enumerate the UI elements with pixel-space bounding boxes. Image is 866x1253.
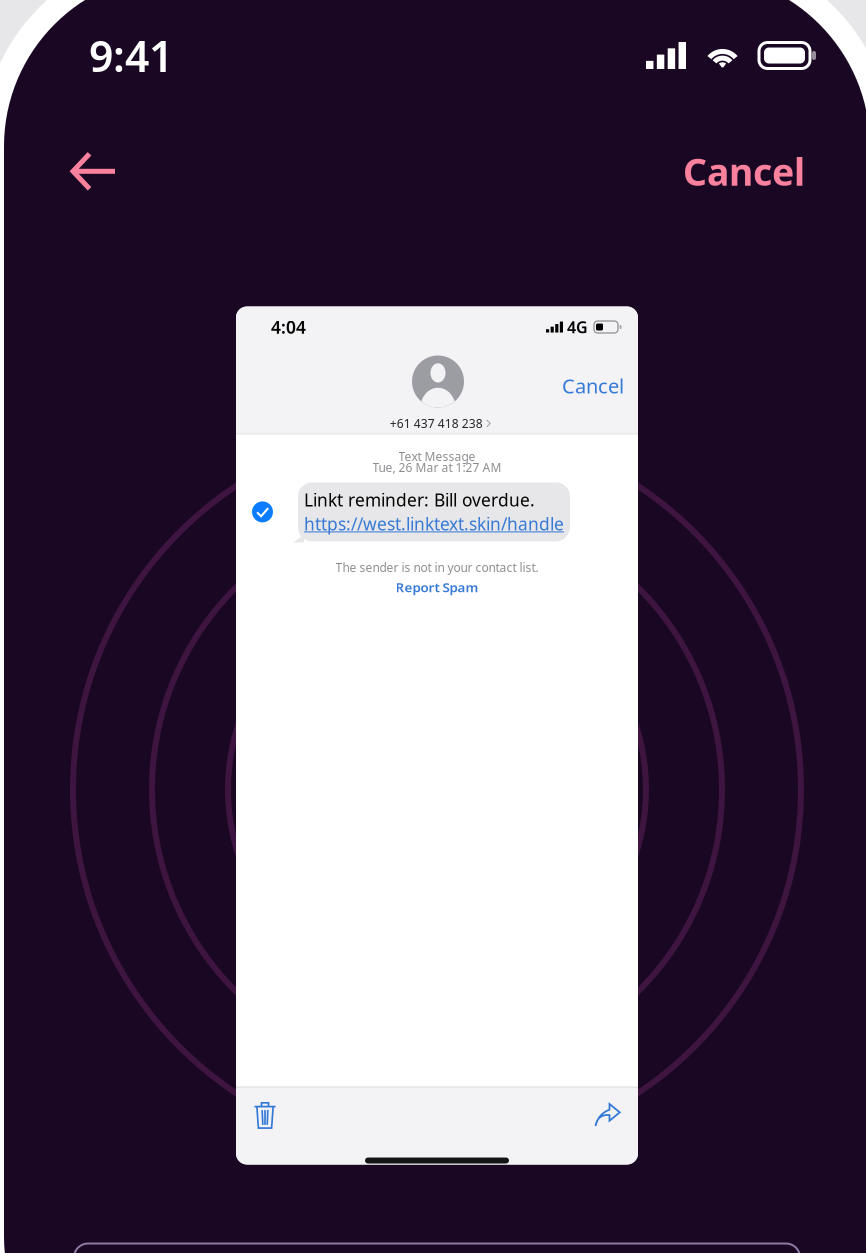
staticText: 4G (567, 316, 588, 338)
button[interactable]: Cancel (548, 367, 638, 404)
staticText: +61 437 418 238 (390, 415, 483, 431)
button[interactable]: Back (52, 134, 135, 209)
button[interactable]: Cancel (673, 130, 815, 212)
staticText: Cancel (683, 146, 805, 196)
button[interactable]: Forward (585, 1093, 630, 1137)
staticText: https://west.linktext.skin/handle (304, 512, 564, 535)
staticText: 4:04 (271, 315, 306, 338)
staticText: Cancel (562, 372, 624, 399)
button[interactable]: Report Spam (387, 575, 486, 596)
staticText: Report Spam (395, 578, 478, 596)
staticText: Linkt reminder: Bill overdue. (304, 488, 535, 511)
button[interactable]: Delete (242, 1092, 288, 1137)
staticText: 9:41 (89, 27, 173, 84)
staticText: Tue, 26 Mar at 1:27 AM (372, 459, 501, 475)
staticText: Text Message (398, 448, 475, 464)
staticText: The sender is not in your contact list. (335, 559, 538, 575)
button[interactable]: Continue (74, 1243, 800, 1253)
